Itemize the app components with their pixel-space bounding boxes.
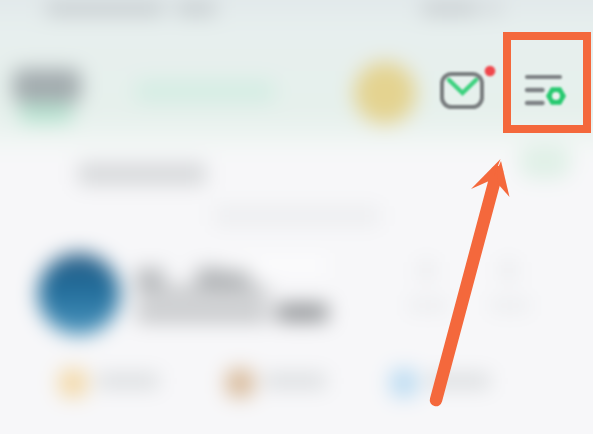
button[interactable]: Messages — [438, 64, 498, 112]
button[interactable]: Order list — [520, 68, 570, 110]
button[interactable] — [218, 358, 368, 406]
button[interactable] — [382, 358, 532, 406]
button[interactable] — [51, 358, 201, 406]
